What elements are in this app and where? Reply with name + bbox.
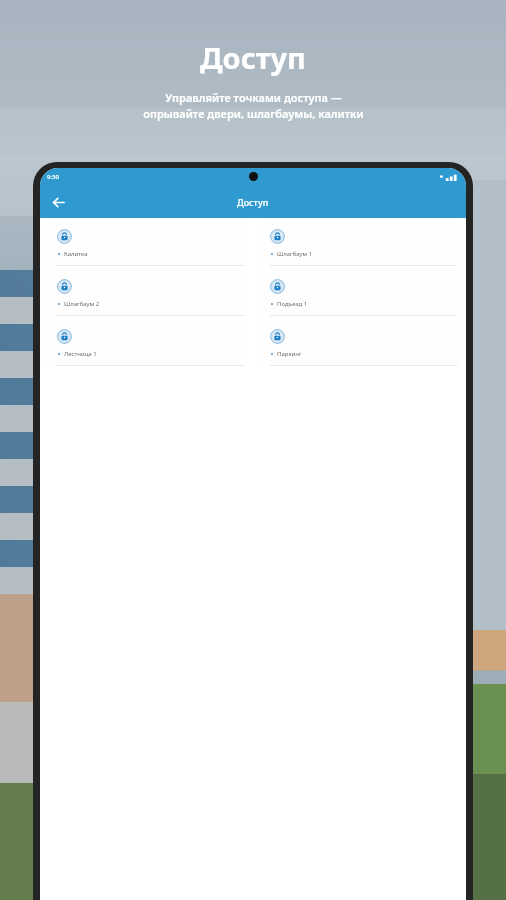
staticText: 9:30 xyxy=(47,173,59,181)
button[interactable]: Калитка xyxy=(47,220,246,266)
staticText: Шлагбаум 1 xyxy=(277,250,313,258)
button[interactable]: Назад xyxy=(44,188,72,216)
staticText: Доступ xyxy=(237,196,269,208)
staticText: Управляйте точками доступа — опрывайте д… xyxy=(143,90,364,121)
button[interactable]: Шлагбаум 2 xyxy=(47,270,246,316)
button[interactable]: Подъезд 1 xyxy=(260,270,459,316)
staticText: Лестница 1 xyxy=(64,350,97,358)
staticText: Калитка xyxy=(64,250,88,258)
staticText: Подъезд 1 xyxy=(277,300,308,308)
button[interactable]: Лестница 1 xyxy=(47,320,246,366)
button[interactable]: Шлагбаум 1 xyxy=(260,220,459,266)
staticText: Шлагбаум 2 xyxy=(64,300,100,308)
button[interactable]: Паркинг xyxy=(260,320,459,366)
staticText: Доступ xyxy=(200,38,306,77)
staticText: Паркинг xyxy=(277,350,302,358)
